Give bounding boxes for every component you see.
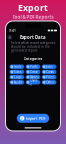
button[interactable]: Jobs (42, 64, 56, 69)
staticText: Tools (14, 65, 21, 69)
staticText: Export (18, 1, 48, 13)
staticText: Costs (46, 70, 53, 74)
staticText: ‹ (9, 34, 11, 40)
button[interactable]: Logs (9, 75, 24, 79)
staticText: Export Data (20, 34, 46, 40)
button[interactable]: Audit (9, 80, 24, 84)
staticText: Tool & PDF Reports (12, 14, 53, 20)
staticText: Files (46, 75, 53, 79)
button[interactable]: Sites (9, 70, 24, 74)
button[interactable]: Parts (26, 64, 40, 69)
button[interactable]: Crew (26, 70, 40, 74)
staticText: Usage (30, 78, 38, 86)
staticText: Crew (30, 70, 37, 74)
staticText: Select which record categories should be… (11, 41, 55, 52)
staticText: ↓ (20, 116, 24, 121)
staticText: Other (46, 80, 54, 84)
button[interactable]: ↓ (17, 114, 49, 123)
staticText: Sites (14, 70, 21, 74)
button[interactable]: Other (42, 80, 56, 84)
button[interactable]: Back (7, 34, 12, 40)
staticText: Parts (30, 65, 37, 69)
button[interactable]: Files (42, 75, 56, 79)
staticText: Audit (14, 80, 22, 84)
staticText: 9:41 (9, 28, 16, 33)
button[interactable]: Usage (26, 80, 40, 84)
staticText: Jobs (46, 65, 52, 69)
staticText: Export PDF (26, 116, 46, 121)
button[interactable]: Tools (9, 64, 24, 69)
button[interactable]: Notes (26, 75, 40, 79)
staticText: Logs (14, 75, 21, 79)
staticText: Notes (30, 75, 38, 79)
staticText: Categories (23, 56, 42, 61)
button[interactable]: Costs (42, 70, 56, 74)
